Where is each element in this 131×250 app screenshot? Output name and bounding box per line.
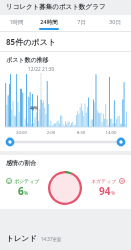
staticText: 94	[99, 184, 111, 198]
staticText: 24時間	[40, 18, 58, 26]
staticText: 1時間	[9, 18, 24, 26]
button[interactable]: 24時間	[32, 15, 65, 31]
button[interactable]: 1時間	[0, 15, 32, 31]
staticText: 7日	[77, 18, 86, 26]
staticText: 感情の割合	[6, 159, 37, 167]
staticText: %	[111, 190, 116, 197]
staticText: ポジティブ	[14, 178, 40, 184]
staticText: 8:30	[66, 129, 96, 135]
staticText: 6	[18, 184, 24, 198]
button[interactable]: 7日	[65, 15, 98, 31]
button[interactable]: トレンド	[0, 234, 131, 250]
button[interactable]: ネガティブ	[84, 178, 131, 198]
staticText: 14:37更新	[41, 236, 62, 242]
staticText: 85件のポスト	[6, 36, 56, 47]
staticText: トレンド	[6, 234, 37, 243]
staticText: ネガティブ	[91, 178, 117, 184]
staticText: ポスト数の推移	[6, 56, 49, 64]
staticText: 4件	[30, 105, 38, 112]
staticText: 20:00	[7, 129, 36, 135]
button[interactable]: 30日	[98, 15, 131, 31]
staticText: 30日	[109, 18, 121, 26]
button[interactable]: ポジティブ	[0, 178, 46, 198]
staticText: 12/22 21:30	[28, 66, 55, 73]
button[interactable]: 時間範囲スライダー	[0, 135, 131, 149]
staticText: 2:00	[36, 129, 66, 135]
staticText: 14:00	[96, 129, 126, 135]
staticText: %	[24, 190, 29, 197]
staticText: リコレクト募集のポスト数グラフ	[6, 3, 106, 11]
